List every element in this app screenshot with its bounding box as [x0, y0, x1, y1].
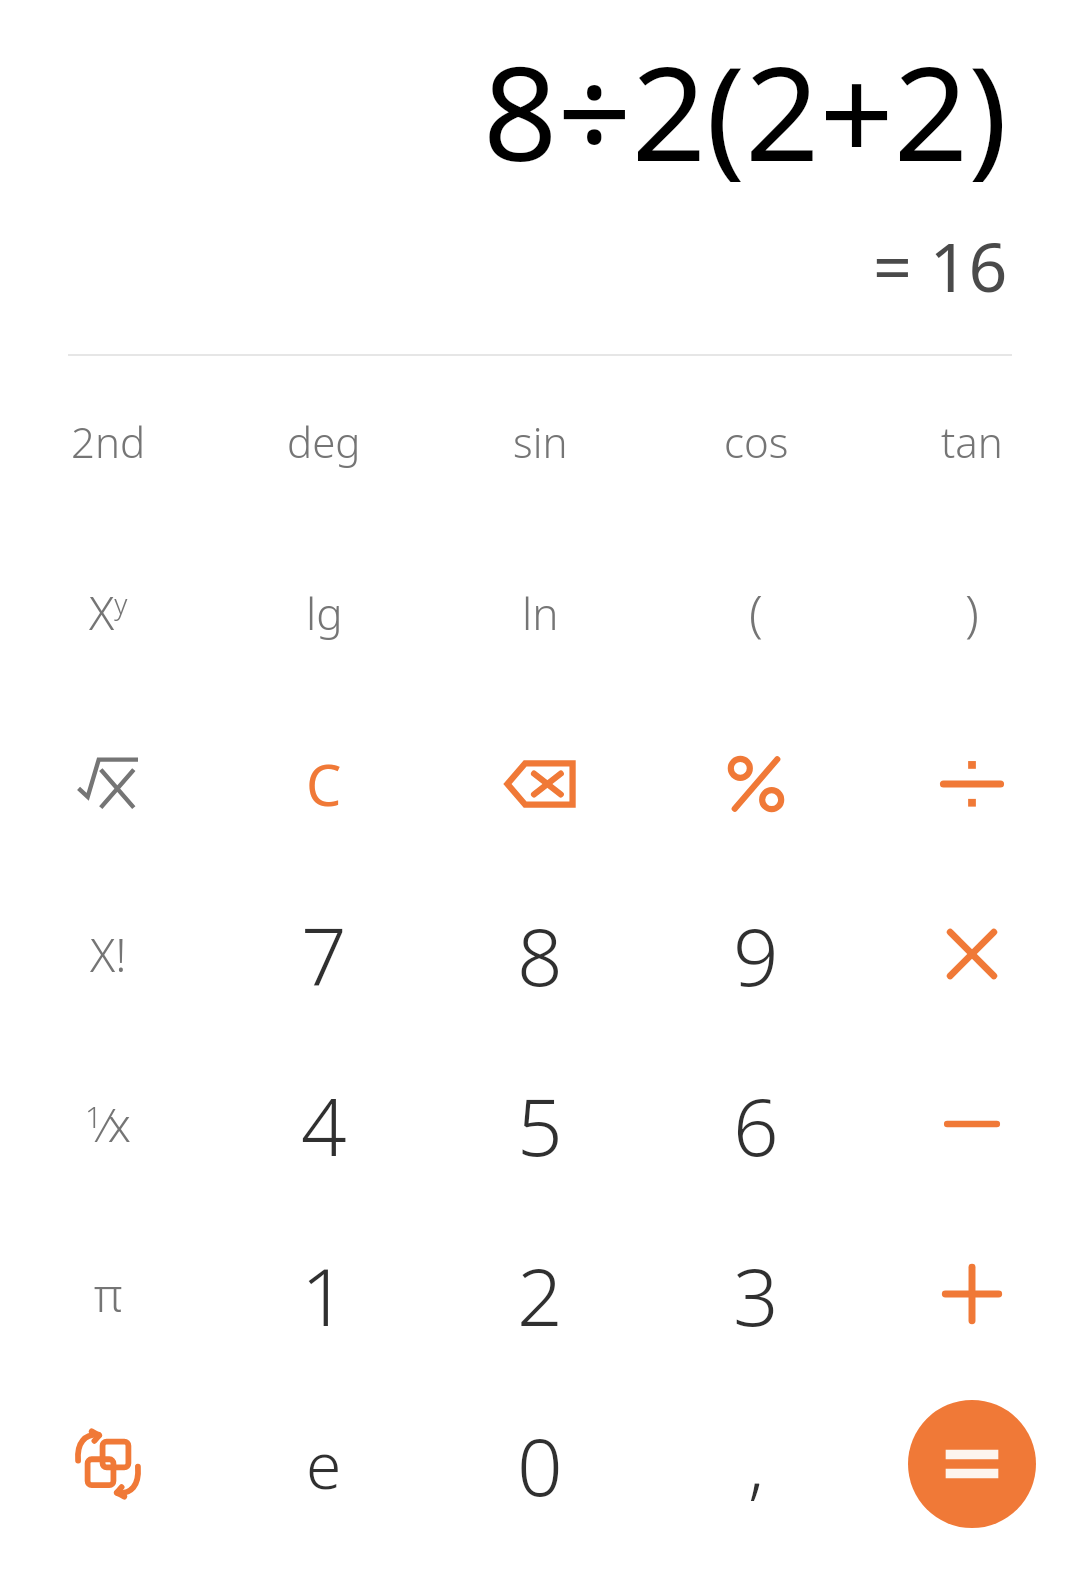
staticText: deg	[287, 413, 361, 470]
button[interactable]: 2	[432, 1209, 648, 1379]
staticText: 1	[301, 1240, 347, 1349]
button[interactable]: Divide	[864, 698, 1080, 869]
staticText: Xy	[89, 581, 128, 644]
button[interactable]: 2nd	[0, 356, 216, 527]
staticText: lg	[306, 583, 343, 643]
button[interactable]: Plus	[864, 1209, 1080, 1379]
button[interactable]: Minus	[864, 1039, 1080, 1209]
staticText: 8	[517, 900, 563, 1009]
button[interactable]: X!	[0, 869, 216, 1039]
button[interactable]: 3	[648, 1209, 864, 1379]
button[interactable]: Percent	[648, 698, 864, 869]
staticText: )	[965, 579, 979, 647]
button[interactable]: (	[648, 527, 864, 698]
staticText: 2	[517, 1240, 563, 1349]
button[interactable]: 1⁄x	[0, 1039, 216, 1209]
button[interactable]: π	[0, 1209, 216, 1379]
staticText: 6	[733, 1070, 779, 1179]
staticText: cos	[724, 413, 789, 470]
button[interactable]: )	[864, 527, 1080, 698]
staticText: X!	[90, 923, 127, 986]
staticText: = 16	[873, 219, 1008, 312]
button[interactable]: 0	[432, 1379, 648, 1549]
button[interactable]	[908, 1400, 1036, 1528]
button[interactable]: Square root	[0, 698, 216, 869]
button[interactable]: e	[216, 1379, 432, 1549]
staticText: sin	[513, 413, 568, 470]
staticText: 3	[733, 1240, 779, 1349]
button[interactable]: Equals	[864, 1379, 1080, 1549]
staticText: e	[306, 1421, 342, 1508]
staticText: ,	[748, 1415, 765, 1513]
staticText: 5	[517, 1070, 563, 1179]
button[interactable]: Xy	[0, 527, 216, 698]
button[interactable]: Delete	[432, 698, 648, 869]
staticText: 4	[301, 1070, 347, 1179]
button[interactable]: 6	[648, 1039, 864, 1209]
button[interactable]: 4	[216, 1039, 432, 1209]
staticText: 0	[517, 1410, 563, 1519]
staticText: ln	[522, 583, 559, 643]
staticText: 2nd	[71, 413, 146, 470]
button[interactable]: 5	[432, 1039, 648, 1209]
button[interactable]: tan	[864, 356, 1080, 527]
button[interactable]: ,	[648, 1379, 864, 1549]
button[interactable]: 8	[432, 869, 648, 1039]
button[interactable]: deg	[216, 356, 432, 527]
button[interactable]: 7	[216, 869, 432, 1039]
button[interactable]: sin	[432, 356, 648, 527]
button[interactable]: Multiply	[864, 869, 1080, 1039]
button[interactable]: cos	[648, 356, 864, 527]
staticText: 9	[733, 900, 779, 1009]
button[interactable]: ln	[432, 527, 648, 698]
button[interactable]: 1	[216, 1209, 432, 1379]
staticText: tan	[941, 413, 1003, 470]
staticText: 8÷2(2+2)	[483, 22, 1008, 199]
button[interactable]: 9	[648, 869, 864, 1039]
staticText: π	[94, 1263, 123, 1326]
button[interactable]: lg	[216, 527, 432, 698]
button[interactable]: Convert units	[0, 1379, 216, 1549]
staticText: (	[749, 579, 763, 647]
staticText: C	[306, 746, 342, 822]
staticText: 7	[301, 900, 347, 1009]
button[interactable]: C	[216, 698, 432, 869]
staticText: 1⁄x	[85, 1093, 131, 1156]
